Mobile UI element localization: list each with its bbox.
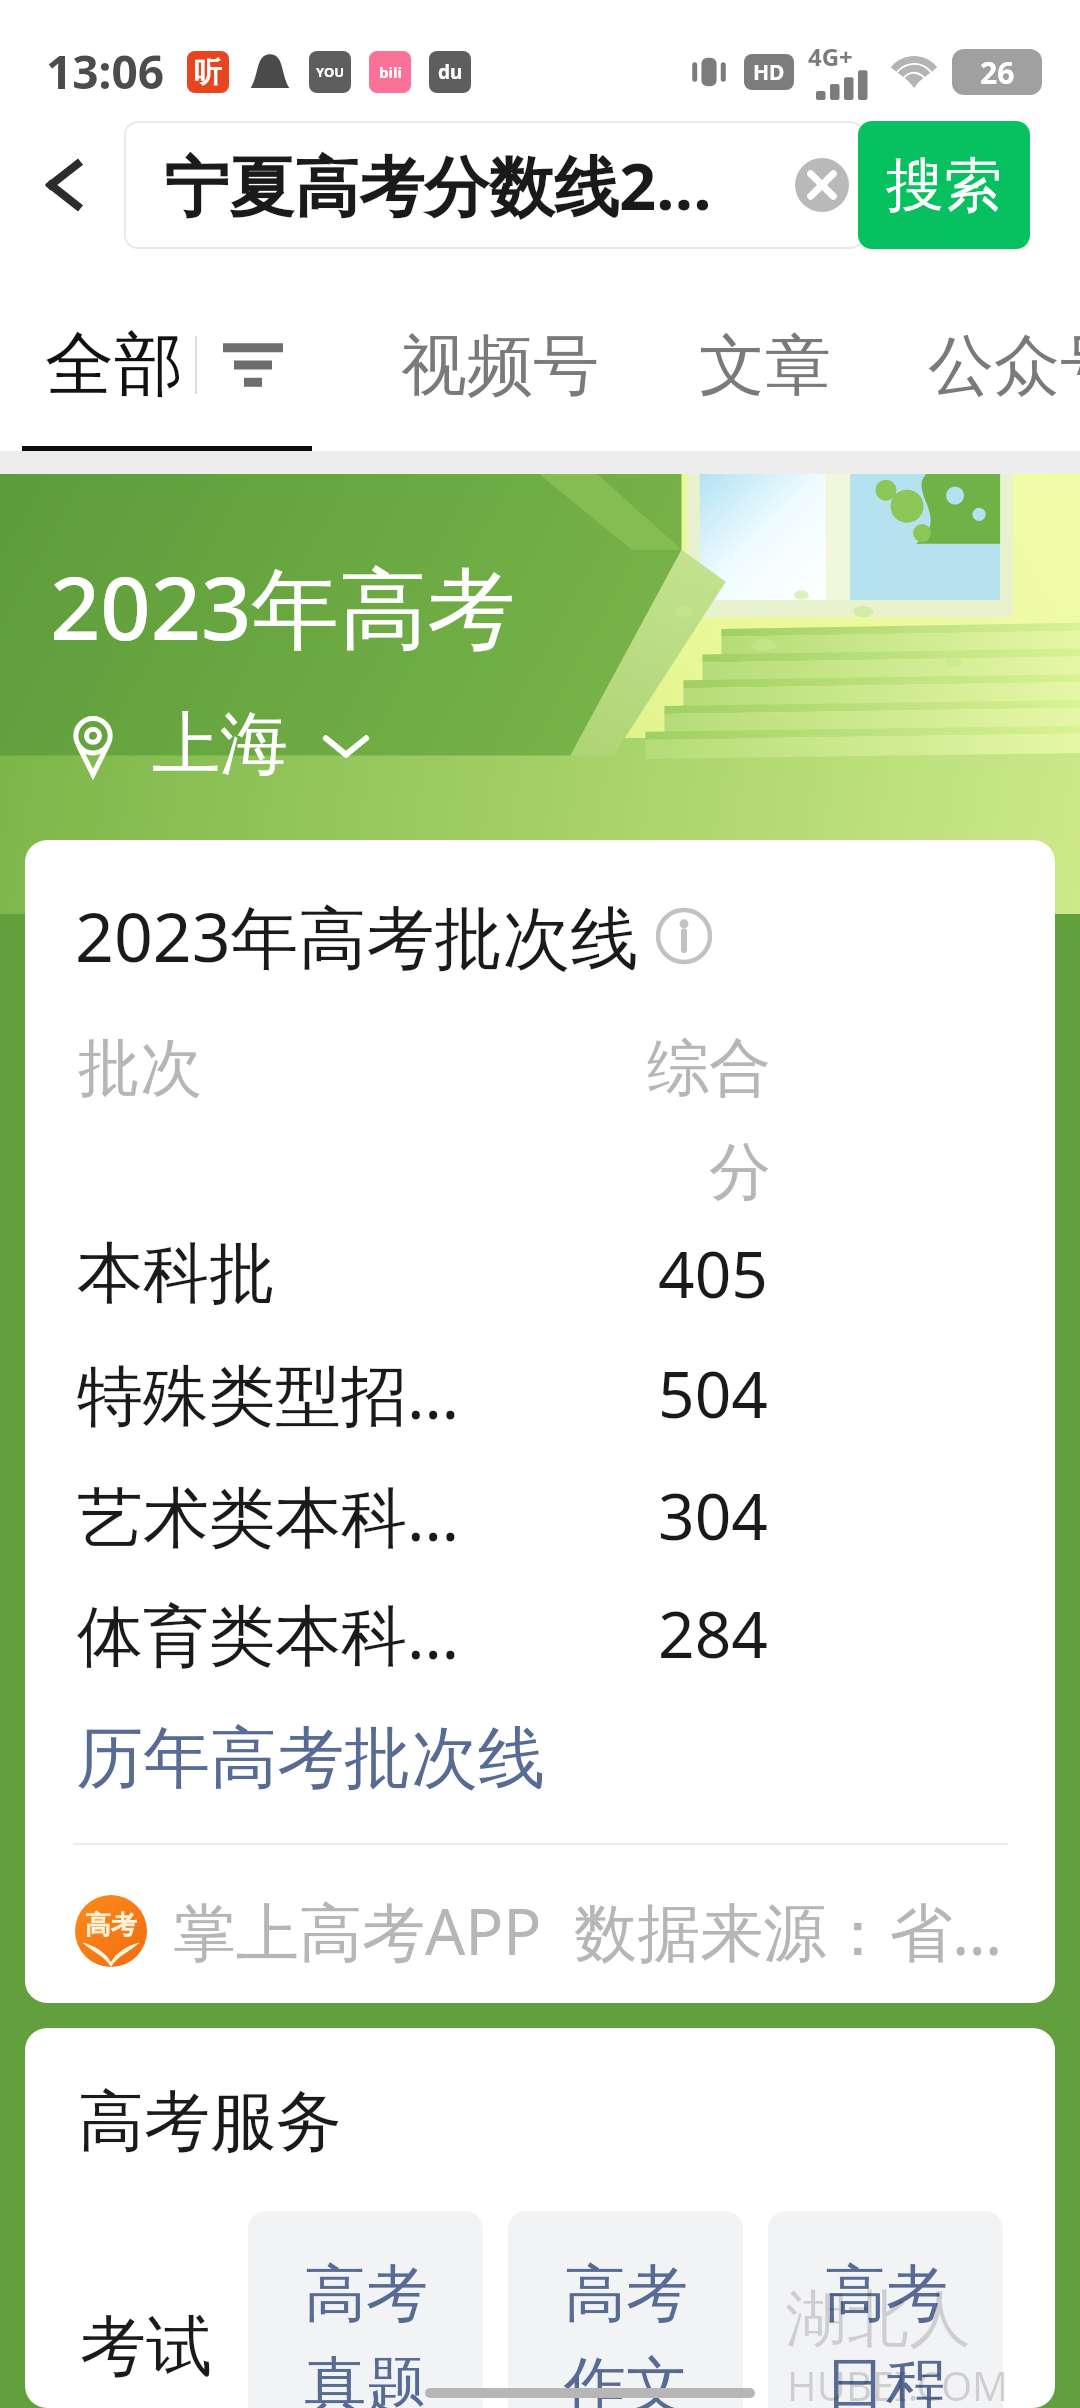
staticText: 历年高考批次线 [76, 1716, 545, 1800]
button[interactable]: 历年高考批次线 [76, 1716, 545, 1800]
staticText: 全部 [45, 322, 183, 409]
button[interactable]: 宁夏高考分数线2… [124, 121, 864, 249]
staticText: du [438, 59, 463, 85]
button[interactable]: 体育类本科… [25, 1574, 1055, 1692]
button[interactable]: 全部 [0, 290, 228, 440]
staticText: 高考服务 [78, 2080, 342, 2163]
staticText: 高考 [85, 1909, 137, 1942]
button[interactable]: 公众号 [928, 290, 1080, 440]
staticText: 304 [593, 1472, 833, 1559]
button[interactable]: 上海 [60, 702, 370, 788]
staticText: 宁夏高考分数线2… [164, 141, 712, 230]
staticText: HD [753, 58, 785, 87]
staticText: 26 [980, 52, 1015, 93]
staticText: 公众号 [928, 324, 1080, 407]
staticText: 文章 [699, 324, 831, 407]
staticText: 湖北人 [785, 2280, 971, 2358]
staticText: 本科批 [77, 1232, 275, 1315]
staticText: 高考 日程 [824, 2255, 948, 2408]
staticText: 考试 [80, 2305, 212, 2388]
staticText: HUBEI.COM [787, 2358, 1009, 2408]
button[interactable]: 特殊类型招… [25, 1334, 1055, 1452]
staticText: 4G+ [808, 40, 853, 73]
button[interactable]: 本科批 [25, 1214, 1055, 1332]
button[interactable]: 清除 [782, 145, 862, 225]
button[interactable]: 搜索 [858, 121, 1030, 249]
staticText: 视频号 [401, 324, 599, 407]
button[interactable]: 艺术类本科… [25, 1456, 1055, 1574]
button[interactable]: 返回 [0, 110, 124, 260]
staticText: YOU [316, 63, 344, 81]
staticText: 特殊类型招… [77, 1348, 460, 1438]
staticText: 2023年高考批次线 [75, 889, 639, 982]
staticText: 批次 [78, 1029, 202, 1107]
staticText: 高考 真题 [304, 2255, 428, 2408]
staticText: 艺术类本科… [77, 1470, 460, 1560]
button[interactable]: 高考 作文 [508, 2211, 743, 2408]
button[interactable]: 高考 真题 [248, 2211, 483, 2408]
staticText: 504 [593, 1350, 833, 1437]
staticText: 听 [194, 55, 222, 90]
staticText: 上海 [152, 702, 288, 788]
button[interactable]: 文章 [655, 290, 875, 440]
button[interactable]: 高考 日程 [768, 2211, 1003, 2408]
staticText: 405 [593, 1230, 833, 1317]
staticText: 掌上高考APP 数据来源：省… [173, 1888, 1003, 1974]
staticText: bili [379, 62, 402, 82]
staticText: 284 [593, 1590, 833, 1677]
staticText: 体育类本科… [77, 1588, 460, 1678]
button[interactable]: 筛选 [198, 290, 308, 440]
button[interactable]: 视频号 [370, 290, 630, 440]
staticText: 13:06 [46, 40, 165, 103]
staticText: 综合 分 [495, 1029, 771, 1211]
staticText: 2023年高考 [50, 546, 516, 666]
button[interactable]: 2023年高考批次线 [25, 840, 1055, 2003]
staticText: 搜索 [886, 149, 1002, 222]
staticText: 高考 作文 [564, 2255, 688, 2408]
